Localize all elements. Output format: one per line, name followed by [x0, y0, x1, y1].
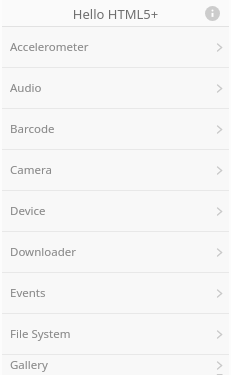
button[interactable]: Gallery	[0, 355, 231, 375]
staticText: Device	[10, 203, 46, 219]
button[interactable]: File System	[0, 314, 231, 354]
staticText: Audio	[10, 80, 42, 96]
button[interactable]: Events	[0, 273, 231, 313]
button[interactable]: Device	[0, 191, 231, 231]
staticText: File System	[10, 326, 71, 342]
staticText: Accelerometer	[10, 39, 89, 55]
staticText: Camera	[10, 162, 52, 178]
staticText: Events	[10, 285, 46, 301]
button[interactable]: About	[204, 5, 221, 22]
button[interactable]: Accelerometer	[0, 27, 231, 67]
staticText: Downloader	[10, 244, 76, 260]
button[interactable]: Downloader	[0, 232, 231, 272]
staticText: Hello HTML5+	[0, 5, 231, 23]
button[interactable]: Audio	[0, 68, 231, 108]
staticText: Gallery	[10, 357, 48, 373]
button[interactable]: Barcode	[0, 109, 231, 149]
button[interactable]: Camera	[0, 150, 231, 190]
staticText: Barcode	[10, 121, 55, 137]
